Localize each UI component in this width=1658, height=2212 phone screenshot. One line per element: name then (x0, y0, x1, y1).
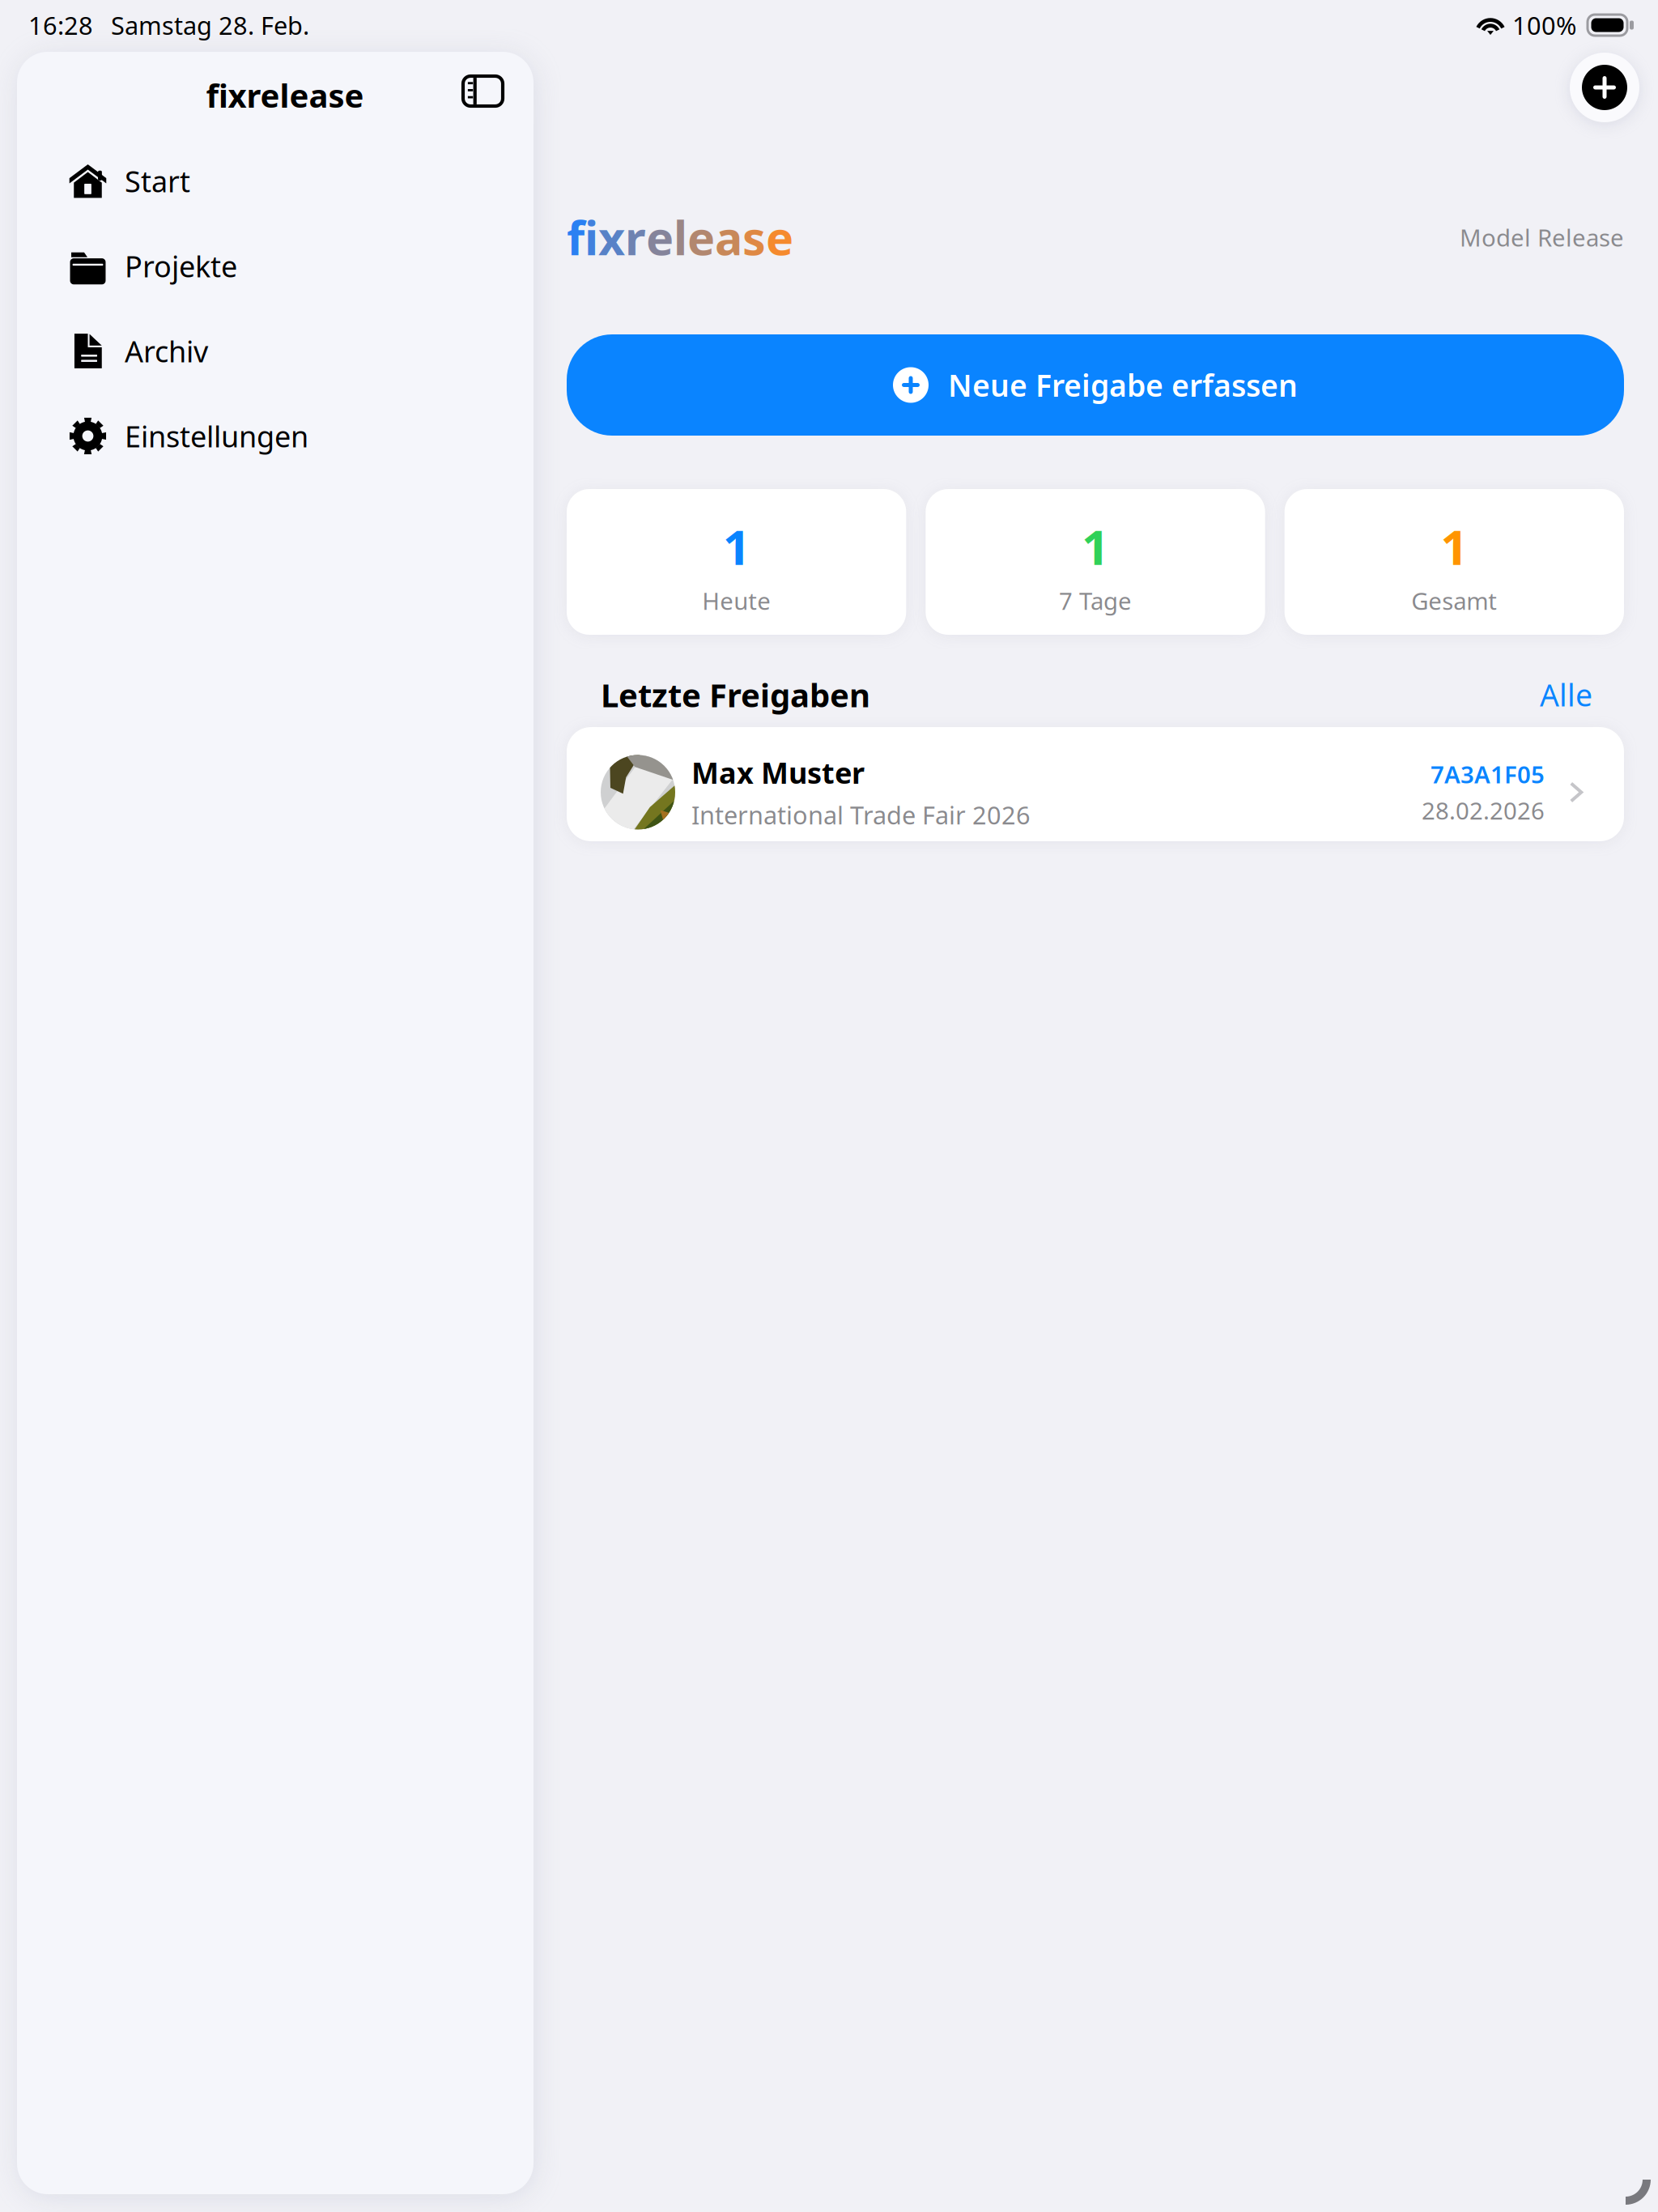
staticText: e (646, 206, 674, 268)
staticText: e (766, 206, 793, 268)
button[interactable]: Toggle sidebar (463, 80, 503, 110)
staticText: International Trade Fair 2026 (691, 798, 1031, 831)
staticText: Heute (702, 585, 771, 616)
staticText: Max Muster (691, 753, 865, 792)
staticText: s (742, 206, 766, 268)
staticText: Letzte Freigaben (601, 673, 870, 716)
staticText: 100% (1512, 9, 1576, 42)
staticText: a (715, 206, 742, 268)
staticText: 1 (723, 514, 750, 578)
staticText: Projekte (125, 247, 237, 285)
button[interactable]: Max Muster (567, 727, 1624, 841)
button[interactable]: Einstellungen (17, 393, 534, 479)
staticText: 7A3A1F05 (1431, 758, 1545, 790)
staticText: Gesamt (1411, 585, 1497, 616)
staticText: Alle (1540, 675, 1592, 715)
staticText: Neue Freigabe erfassen (948, 365, 1298, 405)
staticText: f (567, 206, 585, 268)
staticText: x (598, 206, 625, 268)
staticText: Archiv (125, 332, 208, 370)
button[interactable]: Projekte (17, 223, 534, 308)
staticText: 1 (1440, 514, 1468, 578)
button[interactable]: Start (17, 138, 534, 223)
staticText: Model Release (1460, 221, 1624, 253)
staticText: Start (125, 162, 190, 200)
staticText: fixrelease (206, 74, 364, 117)
staticText: Einstellungen (125, 417, 308, 455)
staticText: 7 Tage (1059, 585, 1132, 616)
staticText: r (625, 206, 646, 268)
staticText: 16:28 (28, 9, 93, 42)
staticText: i (585, 206, 598, 268)
button[interactable]: Archiv (17, 308, 534, 393)
button[interactable]: Alle (1540, 675, 1592, 715)
button[interactable]: Add (1570, 53, 1639, 122)
staticText: Samstag 28. Feb. (111, 9, 309, 42)
button[interactable]: Neue Freigabe erfassen (567, 334, 1624, 436)
staticText: 1 (1082, 514, 1109, 578)
staticText: 28.02.2026 (1422, 795, 1545, 826)
staticText: e (687, 206, 715, 268)
staticText: l (674, 206, 687, 268)
